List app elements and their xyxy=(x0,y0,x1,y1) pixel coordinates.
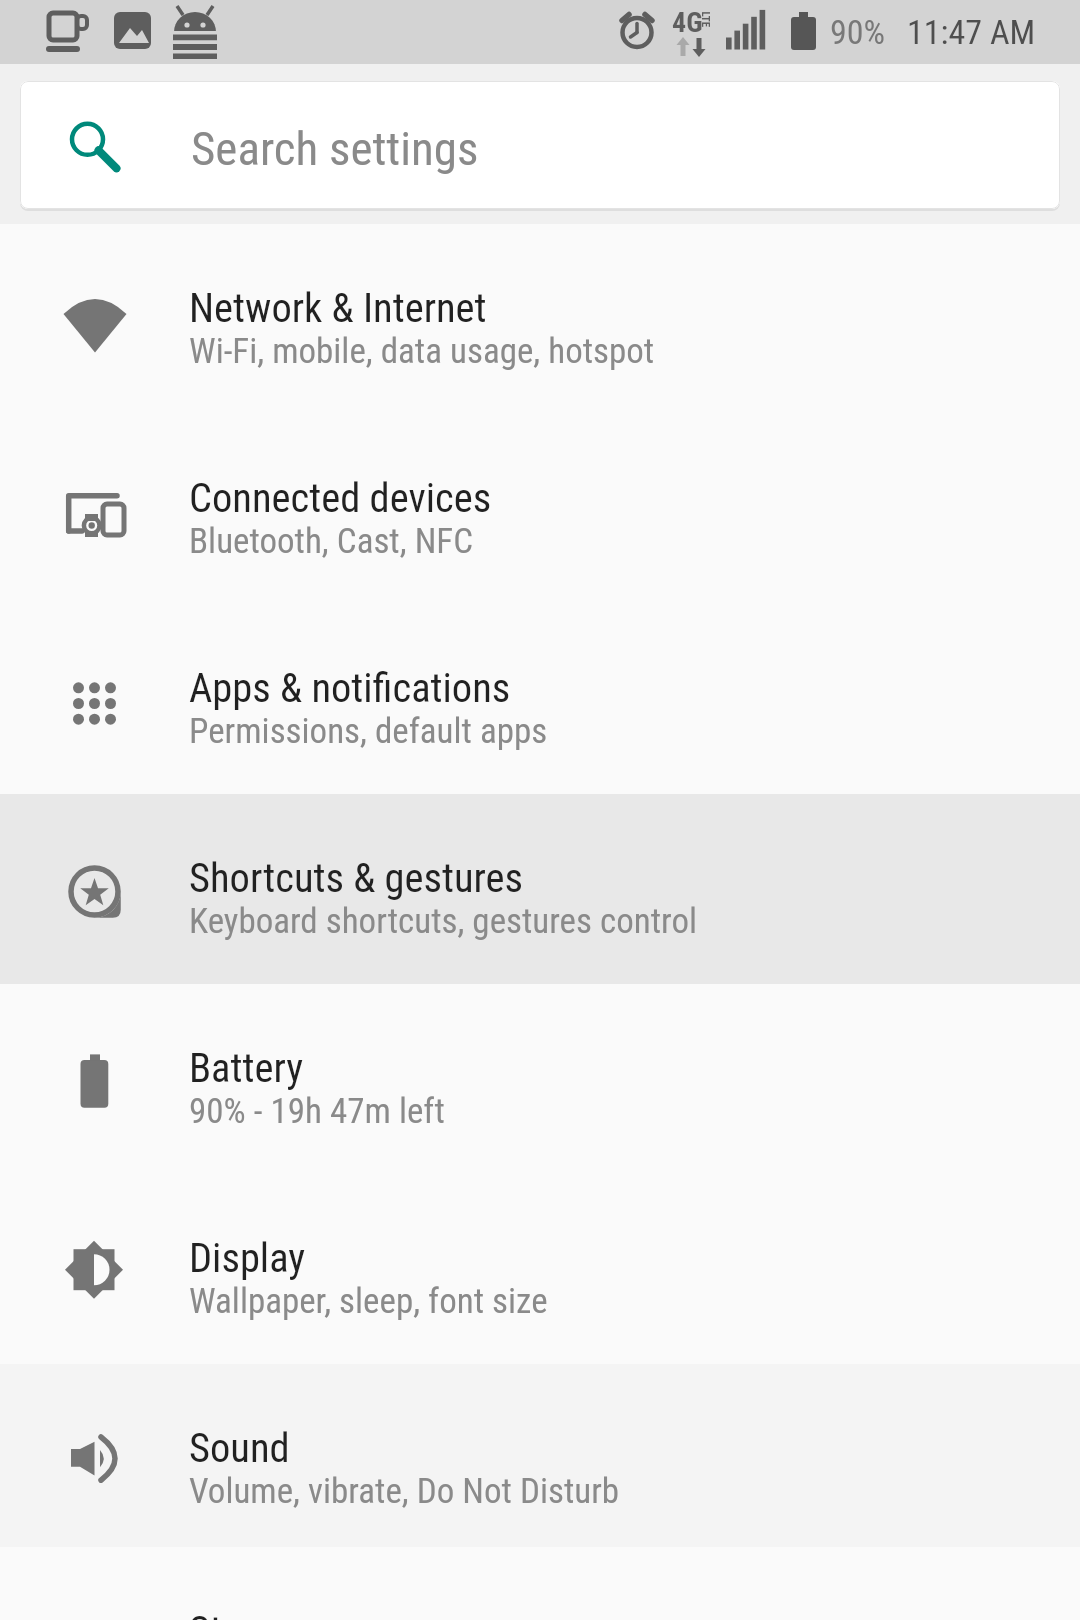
staticText: 4G xyxy=(672,6,703,39)
staticText: Connected devices xyxy=(189,474,492,521)
staticText: Display xyxy=(189,1234,306,1281)
button[interactable]: Shortcuts & gestures xyxy=(0,794,1080,984)
staticText: Battery xyxy=(189,1044,304,1091)
staticText: Sound xyxy=(189,1424,290,1471)
staticText: Wi-Fi, mobile, data usage, hotspot xyxy=(189,331,655,372)
staticText: Storage xyxy=(189,1607,312,1620)
button[interactable]: Connected devices xyxy=(0,414,1080,604)
staticText: Volume, vibrate, Do Not Disturb xyxy=(189,1471,620,1512)
staticText: Permissions, default apps xyxy=(189,711,548,752)
button[interactable]: Sound xyxy=(0,1364,1080,1554)
staticText: Network & Internet xyxy=(189,284,487,331)
staticText: Shortcuts & gestures xyxy=(189,854,523,901)
staticText: 90% - 19h 47m left xyxy=(189,1091,445,1132)
button[interactable]: Display xyxy=(0,1174,1080,1364)
staticText: Bluetooth, Cast, NFC xyxy=(189,521,473,562)
staticText: Search settings xyxy=(191,121,479,176)
button[interactable]: Search settings xyxy=(20,81,1060,209)
staticText: Wallpaper, sleep, font size xyxy=(189,1281,548,1322)
staticText: LTE xyxy=(698,11,711,27)
button[interactable]: Battery xyxy=(0,984,1080,1174)
staticText: Keyboard shortcuts, gestures control xyxy=(189,901,697,942)
staticText: Apps & notifications xyxy=(189,664,511,711)
staticText: 11:47 AM xyxy=(907,12,1036,52)
staticText: 90% xyxy=(830,12,886,52)
button[interactable]: Network & Internet xyxy=(0,224,1080,414)
button[interactable]: Apps & notifications xyxy=(0,604,1080,794)
button[interactable]: Storage xyxy=(0,1547,1080,1620)
